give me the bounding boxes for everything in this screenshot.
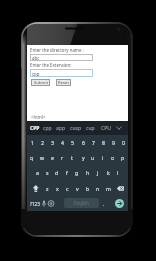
staticText: l bbox=[117, 169, 119, 176]
staticText: CPU bbox=[101, 125, 111, 132]
button[interactable]: x bbox=[52, 181, 62, 196]
button[interactable]: 4 bbox=[57, 135, 67, 150]
staticText: cpp bbox=[43, 125, 52, 132]
staticText: abc bbox=[32, 55, 40, 61]
button[interactable]: f bbox=[62, 165, 72, 180]
button[interactable]: Voice input bbox=[40, 196, 48, 211]
staticText: x bbox=[56, 185, 59, 192]
staticText: cup bbox=[86, 125, 95, 132]
button[interactable]: k bbox=[103, 165, 113, 180]
staticText: 8 bbox=[102, 139, 105, 146]
staticText: Enter the Extension: bbox=[30, 62, 72, 68]
button[interactable]: c bbox=[62, 181, 72, 196]
staticText: y bbox=[82, 154, 85, 161]
button[interactable]: 3 bbox=[47, 135, 57, 150]
button[interactable]: CPP bbox=[27, 121, 42, 135]
staticText: k bbox=[107, 169, 110, 176]
button[interactable]: o bbox=[108, 150, 118, 165]
button[interactable]: cup bbox=[83, 121, 98, 135]
button[interactable]: s bbox=[42, 165, 52, 180]
button[interactable]: n bbox=[93, 181, 103, 196]
button[interactable]: 9 bbox=[108, 135, 118, 150]
staticText: 5 bbox=[71, 139, 74, 146]
button[interactable]: Emoji bbox=[47, 196, 55, 211]
button[interactable]: a bbox=[32, 165, 42, 180]
staticText: app bbox=[56, 125, 65, 132]
button[interactable]: g bbox=[72, 165, 82, 180]
button[interactable]: b bbox=[83, 181, 93, 196]
button[interactable]: Reset bbox=[56, 79, 71, 86]
button[interactable]: abc bbox=[30, 54, 93, 61]
staticText: p bbox=[121, 154, 125, 161]
staticText: Reset bbox=[58, 80, 69, 86]
staticText: c bbox=[66, 185, 69, 192]
button[interactable]: More suggestions bbox=[114, 121, 124, 135]
button[interactable]: p bbox=[118, 150, 128, 165]
staticText: s bbox=[46, 169, 49, 176]
staticText: w bbox=[40, 154, 45, 161]
button[interactable]: d bbox=[52, 165, 62, 180]
button[interactable]: t bbox=[67, 150, 77, 165]
button[interactable]: Enter bbox=[115, 199, 124, 208]
button[interactable]: cpp bbox=[40, 121, 55, 135]
button[interactable]: h bbox=[83, 165, 93, 180]
staticText: 2 bbox=[41, 139, 44, 146]
staticText: r bbox=[61, 154, 64, 161]
button[interactable]: y bbox=[78, 150, 88, 165]
staticText: Enter the directory name : bbox=[30, 47, 84, 53]
button[interactable]: Shift bbox=[27, 181, 42, 196]
button[interactable]: cpp bbox=[30, 69, 93, 77]
button[interactable]: m bbox=[103, 181, 113, 196]
staticText: 4 bbox=[61, 139, 64, 146]
staticText: q bbox=[30, 154, 34, 161]
button[interactable]: ?123 bbox=[27, 196, 42, 211]
staticText: b bbox=[86, 185, 90, 192]
staticText: English bbox=[74, 200, 89, 206]
staticText: e bbox=[51, 154, 54, 161]
button[interactable]: i bbox=[98, 150, 108, 165]
button[interactable]: j bbox=[93, 165, 103, 180]
staticText: n bbox=[96, 185, 100, 192]
staticText: a bbox=[36, 169, 39, 176]
staticText: cusp bbox=[70, 125, 81, 132]
staticText: CPP bbox=[30, 125, 40, 132]
staticText: 9 bbox=[112, 139, 115, 146]
button[interactable]: r bbox=[57, 150, 67, 165]
staticText: . bbox=[103, 200, 105, 207]
button[interactable]: z bbox=[42, 181, 52, 196]
staticText: d bbox=[55, 169, 59, 176]
button[interactable]: 6 bbox=[78, 135, 88, 150]
button[interactable]: 0 bbox=[118, 135, 128, 150]
staticText: j bbox=[97, 169, 99, 176]
button[interactable]: English bbox=[64, 198, 99, 208]
staticText: 0 bbox=[122, 139, 125, 146]
staticText: cpp bbox=[32, 71, 40, 77]
staticText: i bbox=[102, 154, 104, 161]
button[interactable]: CPU bbox=[98, 121, 113, 135]
button[interactable]: 2 bbox=[37, 135, 47, 150]
button[interactable]: cusp bbox=[68, 121, 83, 135]
button[interactable]: Backspace bbox=[113, 181, 128, 196]
staticText: Submit bbox=[34, 80, 48, 86]
staticText: 7 bbox=[92, 139, 95, 146]
button[interactable]: . bbox=[100, 196, 108, 211]
staticText: 1 bbox=[31, 139, 34, 146]
button[interactable]: Submit bbox=[31, 79, 50, 86]
staticText: 6 bbox=[82, 139, 85, 146]
staticText: u bbox=[91, 154, 95, 161]
button[interactable]: l bbox=[113, 165, 123, 180]
button[interactable]: w bbox=[37, 150, 47, 165]
button[interactable]: 1 bbox=[27, 135, 37, 150]
button[interactable]: q bbox=[27, 150, 37, 165]
button[interactable]: e bbox=[47, 150, 57, 165]
staticText: 3 bbox=[51, 139, 54, 146]
button[interactable]: app bbox=[53, 121, 68, 135]
button[interactable]: 5 bbox=[67, 135, 77, 150]
button[interactable]: 8 bbox=[98, 135, 108, 150]
button[interactable]: v bbox=[72, 181, 82, 196]
button[interactable]: u bbox=[88, 150, 98, 165]
staticText: g bbox=[75, 169, 79, 176]
button[interactable]: 7 bbox=[88, 135, 98, 150]
staticText: o bbox=[111, 154, 115, 161]
staticText: <html> bbox=[31, 114, 46, 120]
